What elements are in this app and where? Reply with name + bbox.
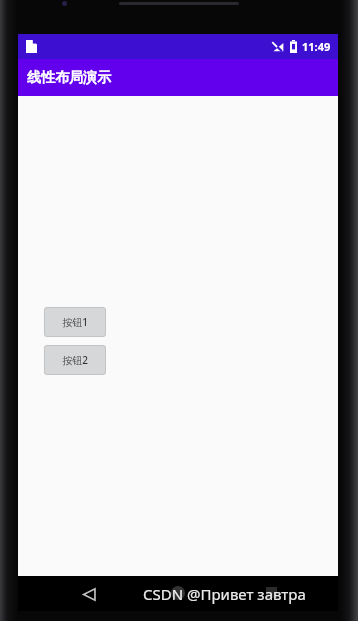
button[interactable]: 按钮1 [44,307,106,337]
staticText: 按钮2 [62,353,88,367]
staticText: 11:49 [302,39,331,54]
button[interactable]: Back [78,583,100,605]
staticText: 按钮1 [62,315,88,329]
staticText: 线性布局演示 [27,69,111,87]
button[interactable]: 按钮2 [44,345,106,375]
staticText: CSDN @Привет завтра [143,584,306,604]
